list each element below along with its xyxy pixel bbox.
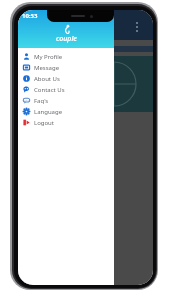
staticText: Contact Us [34,86,65,94]
button[interactable]: Logout [18,117,114,128]
staticText: My Profile [34,53,63,61]
button[interactable]: My Profile [18,51,114,62]
staticText: Logout [34,119,54,127]
staticText: Language [34,108,63,116]
staticText: Faq's [34,97,49,105]
staticText: 10:53 [22,12,38,20]
staticText: About Us [34,75,60,83]
staticText: Message [34,64,60,72]
button[interactable]: Contact Us [18,84,114,95]
button[interactable]: Language [18,106,114,117]
staticText: couple [56,34,77,44]
button[interactable]: Faq's [18,95,114,106]
button[interactable]: Message [18,62,114,73]
button[interactable]: About Us [18,73,114,84]
